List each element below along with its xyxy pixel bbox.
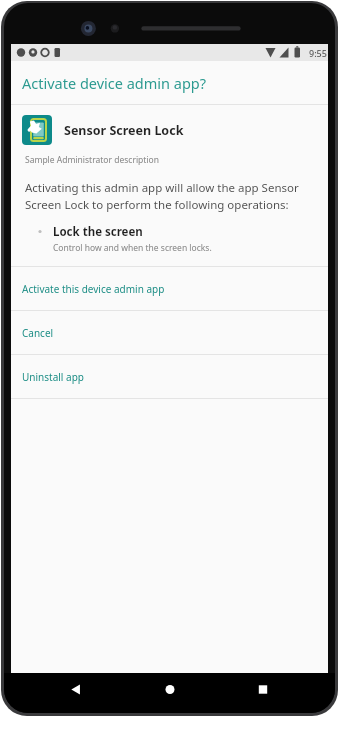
staticText: Activate device admin app? (22, 73, 207, 93)
staticText: 9:55 (309, 47, 327, 59)
staticText: Lock the screen (53, 224, 143, 240)
button[interactable]: Activate this device admin app (11, 267, 328, 310)
staticText: Sample Administrator description (25, 154, 159, 166)
button[interactable]: Cancel (11, 311, 328, 354)
button[interactable]: Recent apps (241, 679, 285, 713)
button[interactable]: Uninstall app (11, 355, 328, 398)
staticText: Control how and when the screen locks. (53, 242, 212, 254)
staticText: Uninstall app (22, 370, 84, 384)
button[interactable]: Back (54, 679, 98, 713)
staticText: Activate this device admin app (22, 282, 165, 296)
staticText: Cancel (22, 326, 54, 340)
button[interactable]: Home (148, 679, 192, 713)
staticText: Sensor Screen Lock (64, 122, 184, 139)
staticText: Activating this admin app will allow the… (25, 180, 310, 212)
